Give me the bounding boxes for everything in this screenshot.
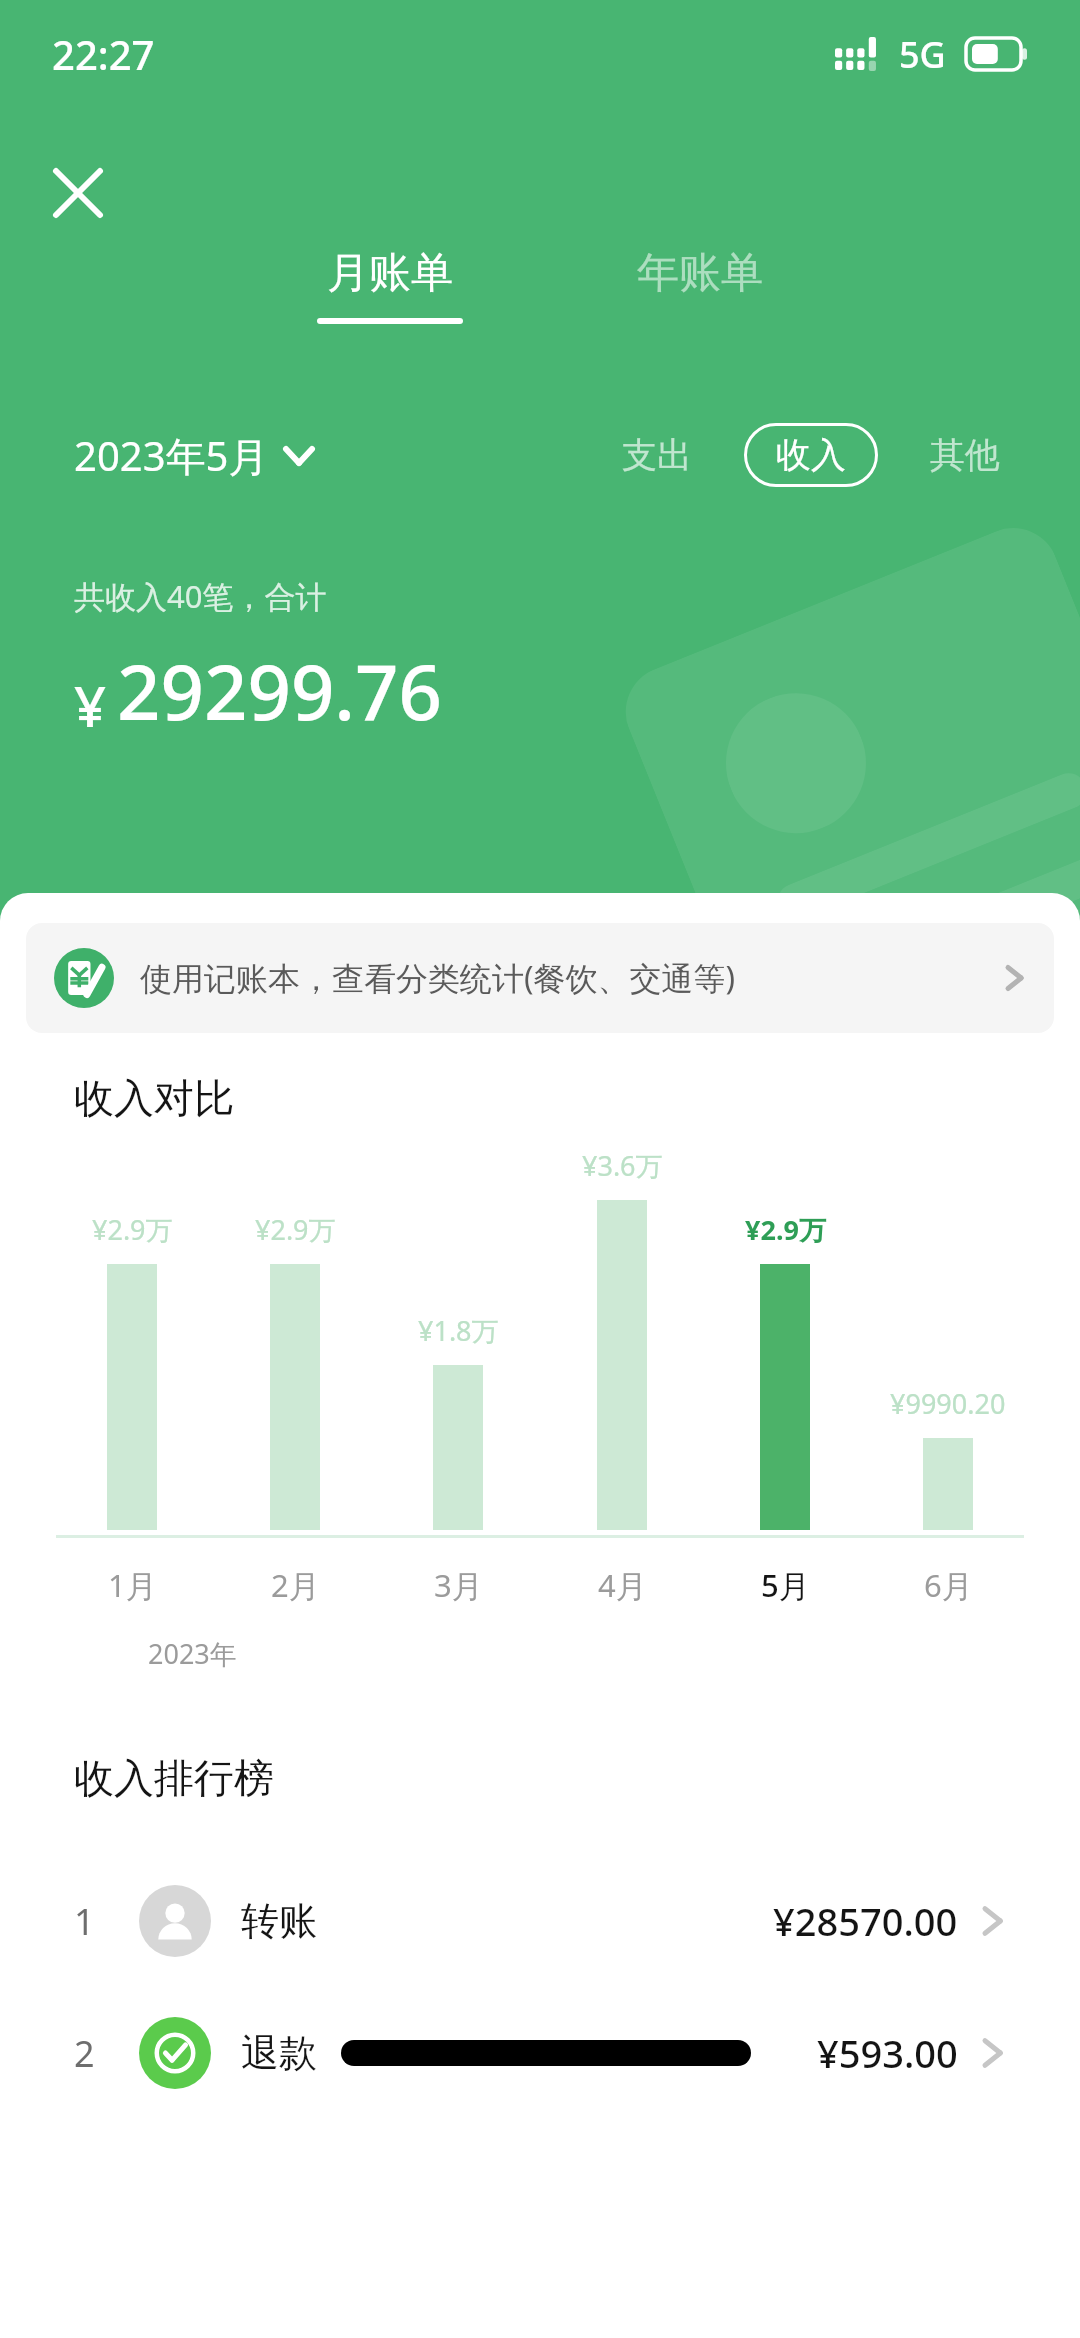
staticText: ¥ [74,667,107,743]
staticText: 2 [74,2029,95,2078]
button[interactable]: 1 [0,1855,1080,1987]
staticText: 其他 [930,433,1000,477]
staticText: 5G [899,30,946,79]
staticText: ¥2.9万 [92,1211,173,1248]
staticText: 5月 [761,1564,810,1606]
button[interactable]: 月账单 [295,243,485,328]
staticText: 22:27 [52,27,155,81]
staticText: ¥2.9万 [745,1211,826,1248]
staticText: 收入 [776,433,846,477]
staticText: ¥9990.20 [890,1385,1006,1422]
button[interactable]: 其他 [930,433,1000,477]
staticText: 使用记账本，查看分类统计(餐饮、交通等) [140,956,736,1000]
staticText: ¥1.8万 [418,1312,499,1349]
staticText: 1 [74,1897,95,1946]
staticText: 4月 [598,1564,647,1606]
staticText: 共收入40笔，合计 [74,575,327,617]
staticText: 转账 [241,1897,317,1945]
staticText: ¥2.9万 [255,1211,336,1248]
staticText: 支出 [622,433,692,477]
staticText: ¥28570.00 [773,1895,958,1947]
staticText: 1月 [108,1564,157,1606]
staticText: 6月 [924,1564,973,1606]
button[interactable]: 年账单 [615,243,785,328]
button[interactable]: Close [30,145,126,241]
button[interactable]: 支出 [622,433,692,477]
staticText: 2023年5月 [74,428,269,483]
staticText: 收入对比 [74,1073,234,1123]
staticText: 年账单 [637,247,763,300]
staticText: 退款 [241,2029,317,2077]
staticText: 3月 [434,1564,483,1606]
button[interactable]: 2 [0,1987,1080,2119]
staticText: 2月 [271,1564,320,1606]
button[interactable]: 使用记账本，查看分类统计(餐饮、交通等) [26,923,1054,1033]
staticText: 2023年 [148,1635,237,1672]
staticText: 29299.76 [117,639,442,743]
button[interactable]: 收入 [776,433,846,477]
staticText: ¥3.6万 [582,1147,663,1184]
staticText: 收入排行榜 [74,1753,274,1803]
staticText: 月账单 [327,247,453,300]
button[interactable]: 2023年5月 [74,428,313,483]
staticText: ¥593.00 [817,2027,958,2079]
